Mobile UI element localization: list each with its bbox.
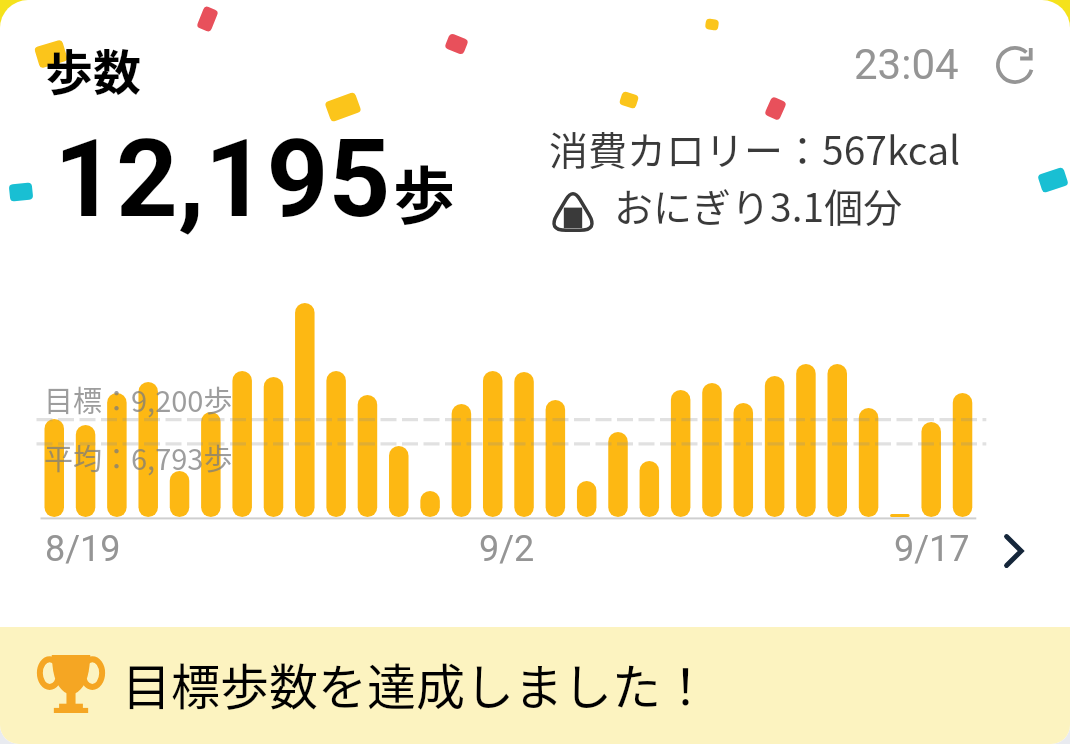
staticText: おにぎり3.1個分 xyxy=(614,177,903,233)
staticText: 12,195 xyxy=(54,116,391,243)
staticText: 8/19 xyxy=(45,528,121,570)
staticText: 目標：9,200歩 xyxy=(44,378,233,420)
staticText: 9/17 xyxy=(894,528,970,570)
staticText: 歩 xyxy=(393,147,456,237)
staticText: 9/2 xyxy=(479,528,535,570)
staticText: 歩数 xyxy=(45,34,142,104)
button[interactable]: Next page xyxy=(984,523,1040,579)
button[interactable]: Refresh xyxy=(988,38,1042,92)
staticText: 消費カロリー：567kcal xyxy=(549,120,961,176)
button[interactable]: Step history graph xyxy=(20,290,1050,580)
staticText: 23:04 xyxy=(854,40,959,89)
staticText: 平均：6,793歩 xyxy=(44,436,233,478)
staticText: 目標歩数を達成しました！ xyxy=(122,648,711,719)
button[interactable]: 目標歩数を達成しました！ xyxy=(0,627,1070,744)
